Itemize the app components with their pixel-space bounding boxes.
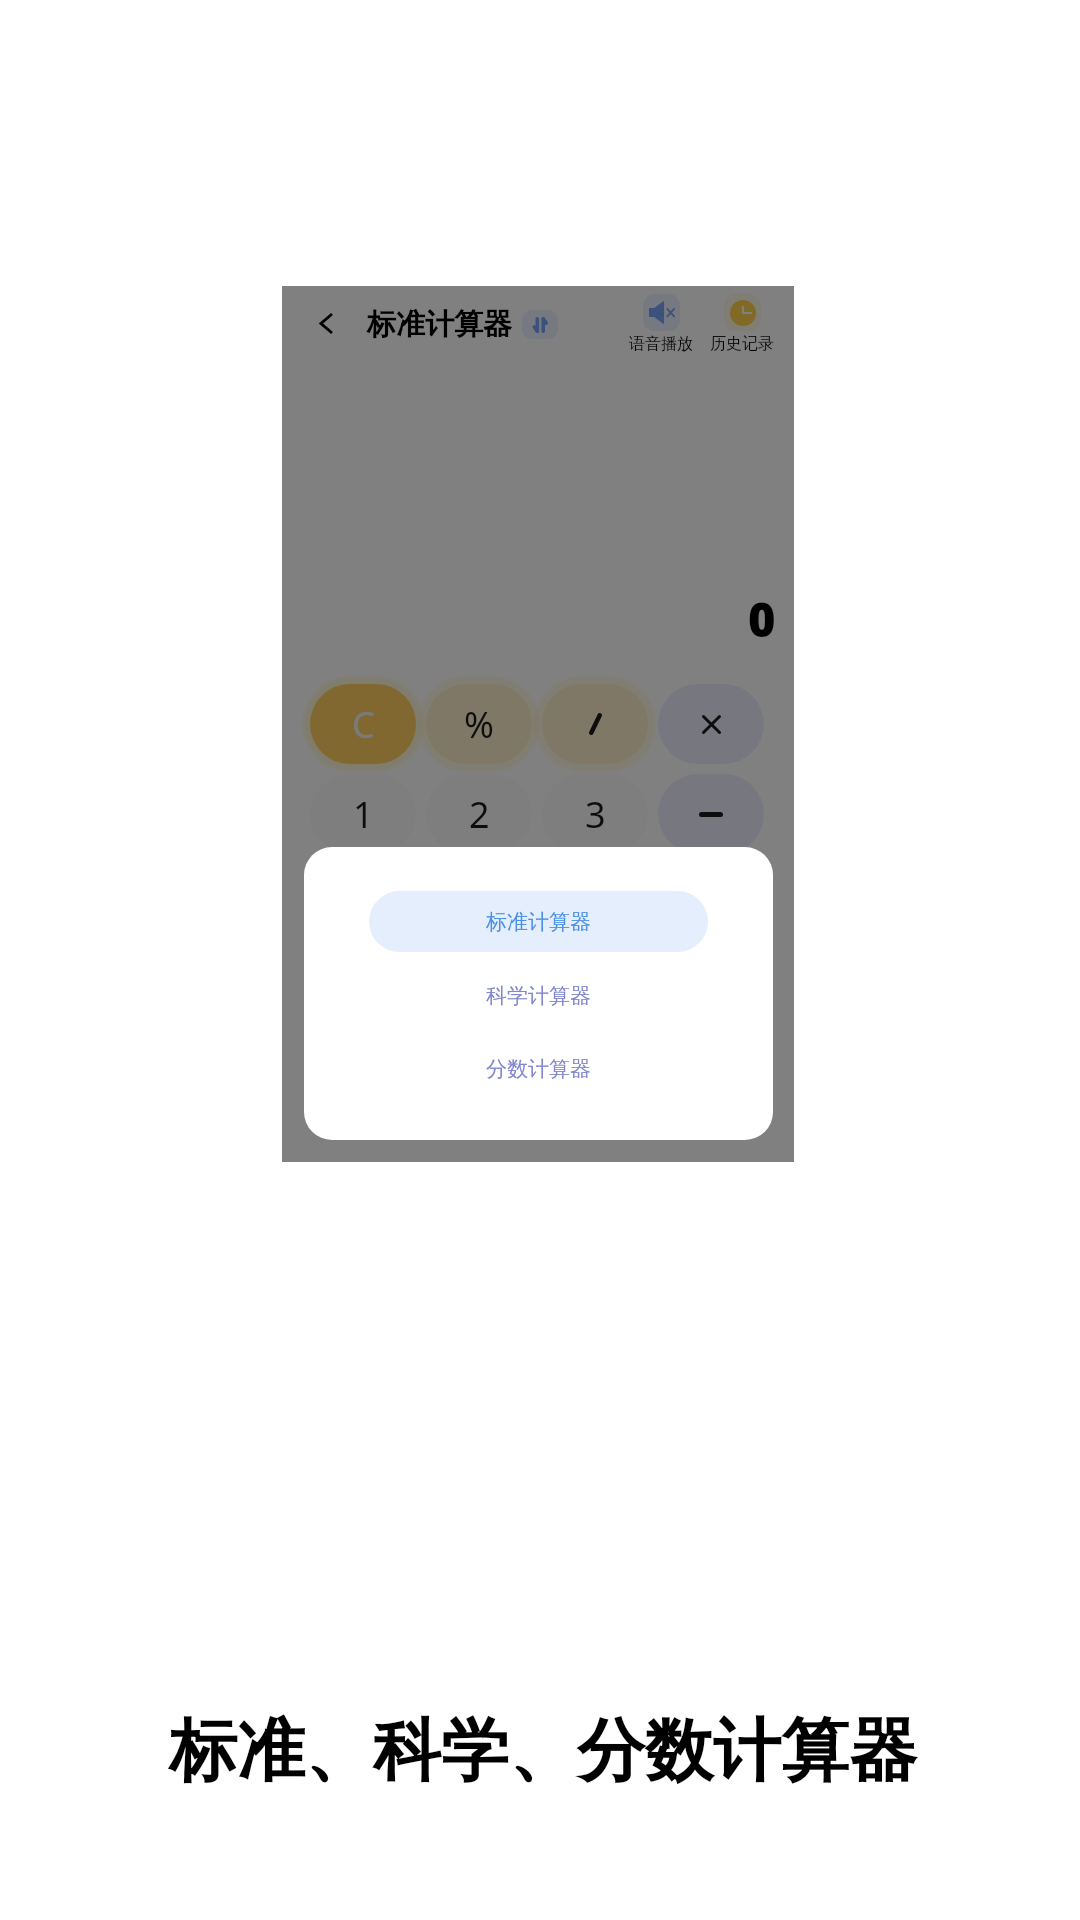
button[interactable]: Back [307, 300, 345, 346]
button[interactable]: Multiply [658, 684, 764, 764]
staticText: 标准、科学、分数计算器 [169, 1709, 917, 1795]
button[interactable]: C [310, 684, 416, 764]
staticText: 历史记录 [710, 334, 774, 354]
staticText: 2 [469, 790, 490, 839]
staticText: 科学计算器 [486, 983, 591, 1009]
button[interactable]: Switch calculator mode [522, 310, 558, 339]
staticText: 3 [585, 790, 606, 839]
staticText: C [352, 700, 375, 749]
button[interactable]: Subtract [658, 774, 764, 854]
button[interactable]: 科学计算器 [304, 966, 773, 1026]
staticText: 分数计算器 [486, 1056, 591, 1082]
button[interactable]: 1 [310, 774, 416, 854]
button[interactable]: 3 [542, 774, 648, 854]
button[interactable]: 语音播放 [629, 294, 693, 354]
button[interactable]: Divide [542, 684, 648, 764]
staticText: 0 [748, 587, 776, 651]
button[interactable]: 历史记录 [710, 294, 774, 354]
button[interactable]: 2 [426, 774, 532, 854]
staticText: 标准计算器 [486, 909, 591, 935]
staticText: % [464, 700, 494, 749]
staticText: 标准计算器 [367, 306, 512, 343]
staticText: 1 [353, 790, 374, 839]
staticText: 语音播放 [629, 334, 693, 354]
button[interactable]: 分数计算器 [304, 1039, 773, 1099]
button[interactable]: 标准计算器 [369, 891, 708, 952]
button[interactable]: % [426, 684, 532, 764]
